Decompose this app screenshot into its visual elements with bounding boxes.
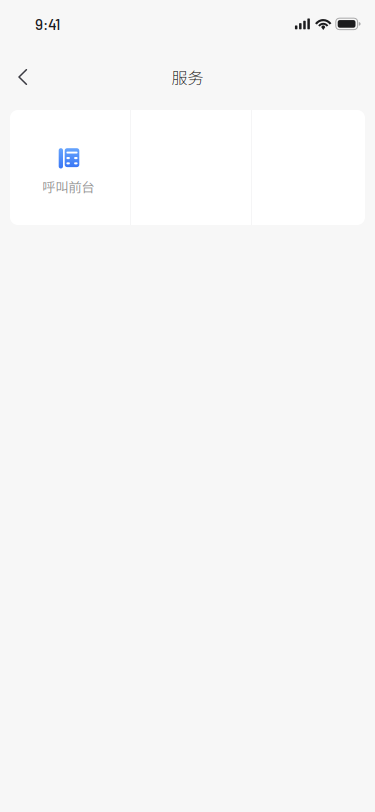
staticText: 服务: [171, 65, 203, 89]
staticText: 9:41: [35, 15, 60, 33]
button[interactable]: 呼叫前台: [10, 110, 130, 225]
button[interactable]: Back: [0, 55, 43, 99]
staticText: 呼叫前台: [42, 177, 94, 196]
